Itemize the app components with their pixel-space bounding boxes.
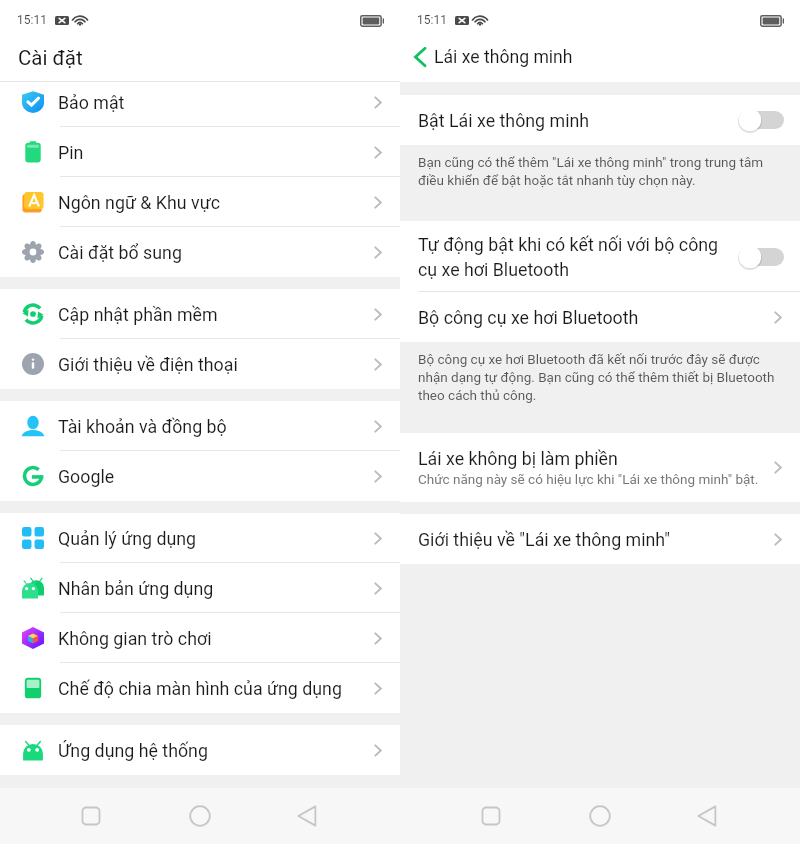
button[interactable]: Home bbox=[178, 794, 222, 838]
staticText: 15:11 bbox=[417, 13, 447, 27]
staticText: Bộ công cụ xe hơi Bluetooth đã kết nối t… bbox=[418, 351, 782, 403]
staticText: Giới thiệu về điện thoại bbox=[58, 354, 238, 375]
button[interactable]: Bộ công cụ xe hơi Bluetooth bbox=[400, 292, 800, 342]
staticText: Bảo mật bbox=[58, 92, 125, 113]
staticText: Tài khoản và đồng bộ bbox=[58, 416, 227, 437]
staticText: Cập nhật phần mềm bbox=[58, 304, 218, 325]
staticText: Chức năng này sẽ có hiệu lực khi "Lái xe… bbox=[418, 471, 759, 487]
staticText: Nhân bản ứng dụng bbox=[58, 578, 214, 599]
staticText: Lái xe không bị làm phiền bbox=[418, 448, 618, 469]
button[interactable]: Bật Lái xe thông minh bbox=[400, 95, 800, 145]
staticText: Giới thiệu về "Lái xe thông minh" bbox=[418, 529, 670, 550]
button[interactable]: Ngôn ngữ & Khu vực bbox=[0, 177, 400, 227]
staticText: Cài đặt bbox=[18, 46, 83, 70]
staticText: Bạn cũng có thể thêm "Lái xe thông minh"… bbox=[418, 154, 782, 188]
staticText: Bộ công cụ xe hơi Bluetooth bbox=[418, 307, 639, 328]
button[interactable]: Giới thiệu về điện thoại bbox=[0, 339, 400, 389]
staticText: Lái xe thông minh bbox=[434, 47, 573, 68]
staticText: Tự động bật khi có kết nối với bộ công c… bbox=[418, 234, 723, 280]
staticText: Ứng dụng hệ thống bbox=[58, 740, 208, 761]
staticText: 15:11 bbox=[17, 13, 47, 27]
button[interactable]: Tự động bật khi có kết nối với bộ công c… bbox=[400, 221, 800, 292]
button[interactable]: Cập nhật phần mềm bbox=[0, 289, 400, 339]
staticText: Cài đặt bổ sung bbox=[58, 242, 182, 263]
button[interactable]: Recent apps bbox=[469, 794, 513, 838]
button[interactable]: Giới thiệu về "Lái xe thông minh" bbox=[400, 514, 800, 564]
button[interactable]: Back bbox=[685, 794, 729, 838]
button[interactable]: Tự động bật khi có kết nối Bluetooth bbox=[738, 244, 784, 270]
button[interactable]: Quản lý ứng dụng bbox=[0, 513, 400, 563]
staticText: Không gian trò chơi bbox=[58, 628, 212, 649]
button[interactable]: Tài khoản và đồng bộ bbox=[0, 401, 400, 451]
button[interactable]: Lái xe không bị làm phiền bbox=[400, 433, 800, 502]
staticText: Chế độ chia màn hình của ứng dụng bbox=[58, 678, 342, 699]
staticText: Google bbox=[58, 466, 115, 487]
button[interactable]: Chế độ chia màn hình của ứng dụng bbox=[0, 663, 400, 713]
staticText: Bật Lái xe thông minh bbox=[418, 110, 590, 131]
staticText: Pin bbox=[58, 142, 84, 163]
button[interactable]: Bảo mật bbox=[0, 77, 400, 127]
button[interactable]: Back bbox=[285, 794, 329, 838]
staticText: Quản lý ứng dụng bbox=[58, 528, 197, 549]
staticText: Ngôn ngữ & Khu vực bbox=[58, 192, 220, 213]
button[interactable]: Nhân bản ứng dụng bbox=[0, 563, 400, 613]
button[interactable]: Ứng dụng hệ thống bbox=[0, 725, 400, 775]
button[interactable]: Home bbox=[578, 794, 622, 838]
button[interactable]: Back bbox=[409, 46, 431, 68]
button[interactable]: Recent apps bbox=[69, 794, 113, 838]
button[interactable]: Bật Lái xe thông minh bbox=[738, 107, 784, 133]
button[interactable]: Cài đặt bổ sung bbox=[0, 227, 400, 277]
button[interactable]: Không gian trò chơi bbox=[0, 613, 400, 663]
button[interactable]: Pin bbox=[0, 127, 400, 177]
button[interactable]: Google bbox=[0, 451, 400, 501]
